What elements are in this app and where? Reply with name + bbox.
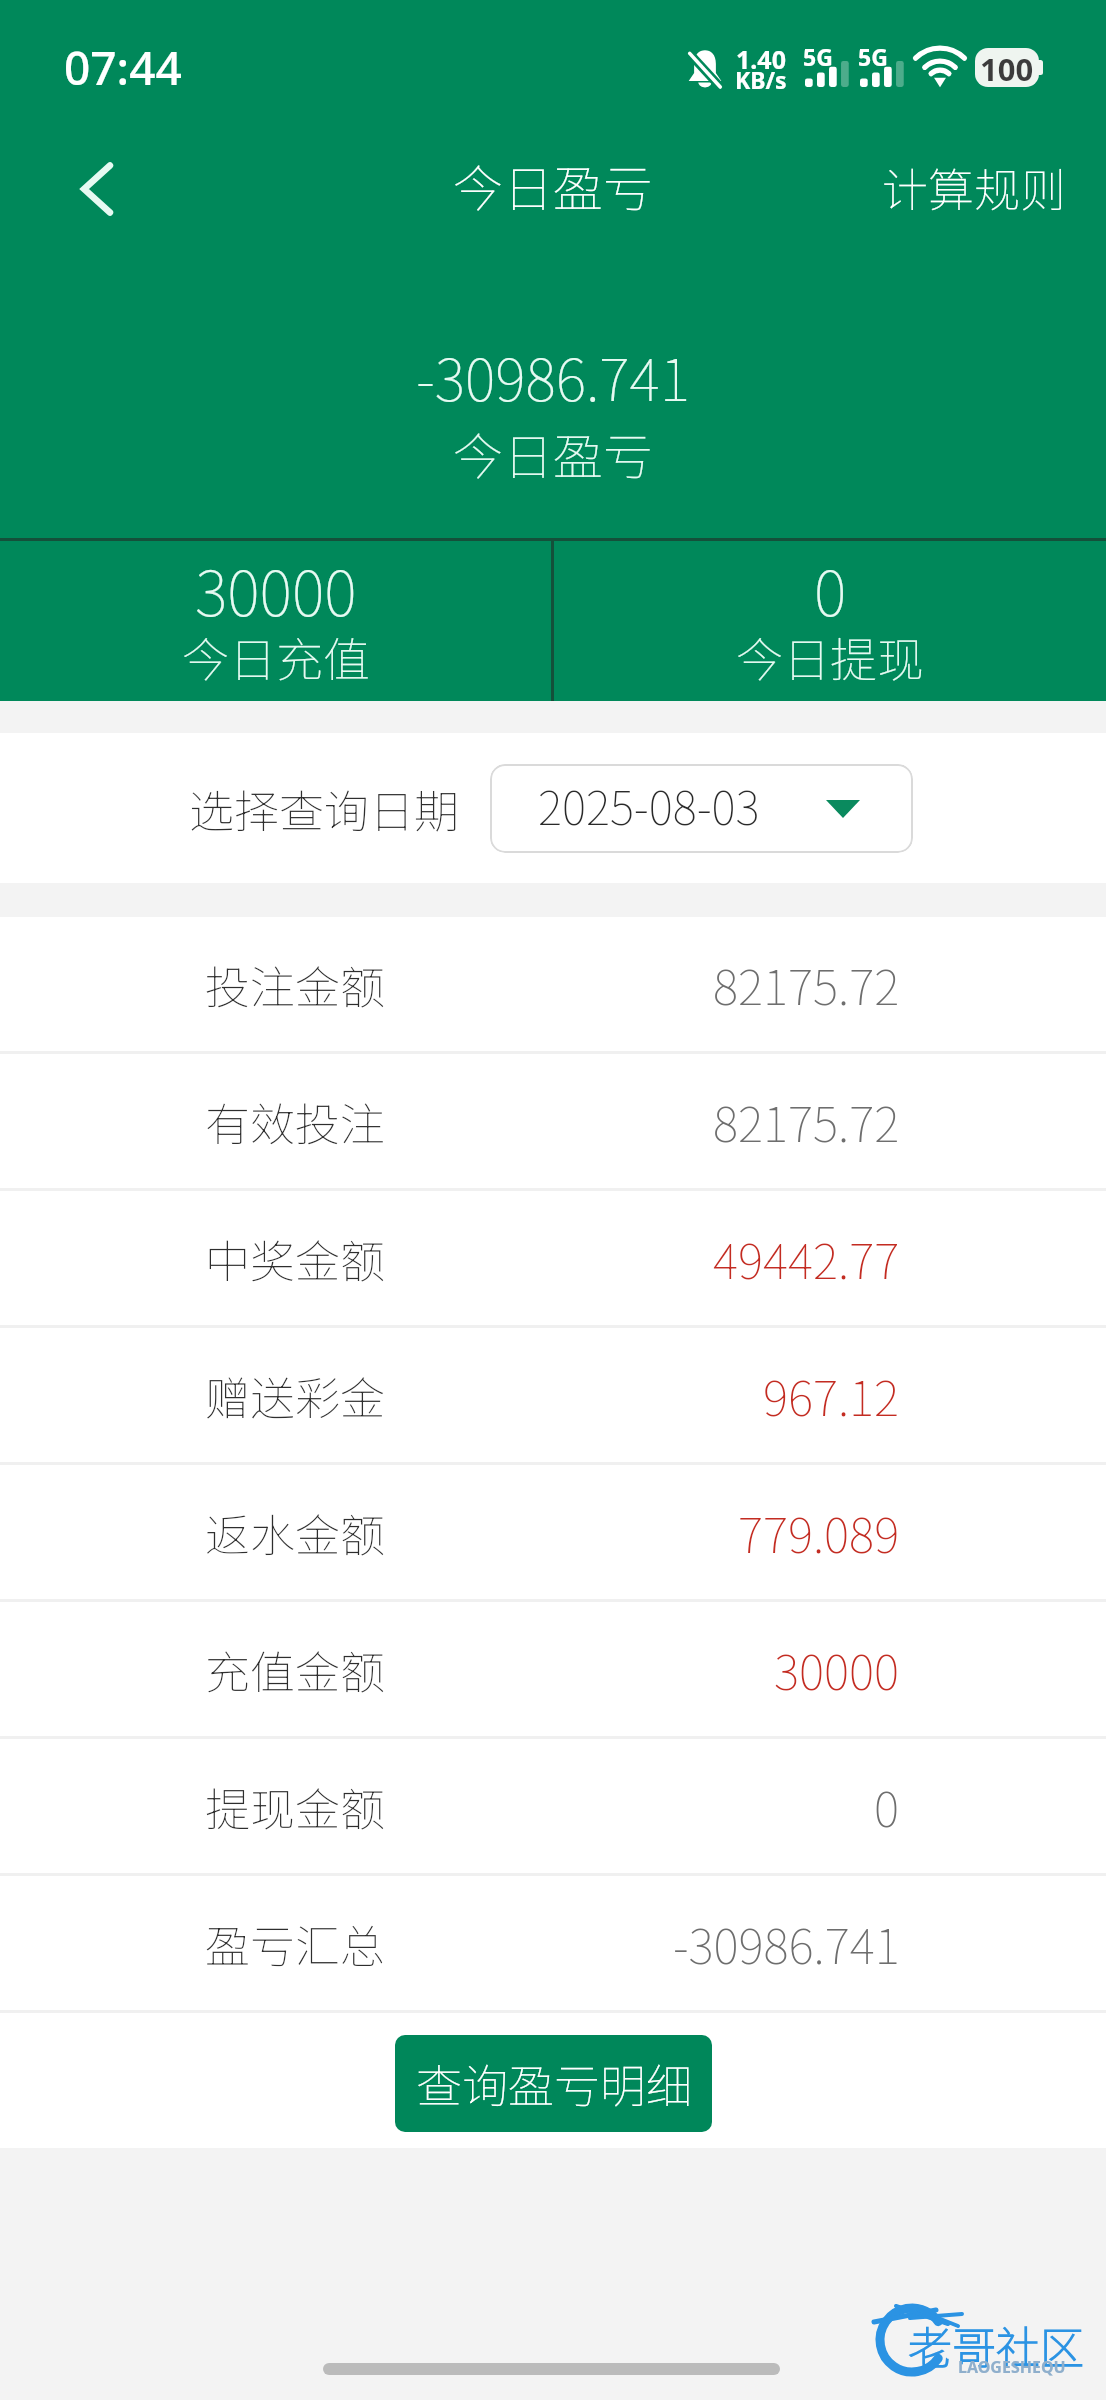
staticText: 盈亏汇总: [205, 1911, 386, 1976]
button[interactable]: 有效投注: [0, 1054, 1106, 1188]
staticText: 07:44: [64, 36, 182, 99]
staticText: 2025-08-03: [538, 772, 760, 839]
staticText: 0: [814, 544, 847, 634]
button[interactable]: 返水金额: [0, 1465, 1106, 1599]
staticText: 投注金额: [205, 952, 386, 1017]
staticText: 今日盈亏: [453, 417, 653, 489]
button[interactable]: 盈亏汇总: [0, 1876, 1106, 2010]
staticText: 选择查询日期: [189, 776, 460, 841]
button[interactable]: 提现金额: [0, 1739, 1106, 1873]
button[interactable]: 计算规则: [830, 136, 1106, 239]
button[interactable]: 中奖金额: [0, 1191, 1106, 1325]
staticText: 查询盈亏明细: [416, 2050, 692, 2117]
staticText: 967.12: [763, 1360, 900, 1430]
staticText: 100: [980, 48, 1034, 87]
button[interactable]: 0: [554, 541, 1106, 701]
staticText: 今日盈亏: [453, 149, 653, 221]
staticText: 返水金额: [205, 1500, 386, 1565]
staticText: 老哥社区: [908, 2313, 1084, 2377]
staticText: 0: [874, 1771, 900, 1841]
staticText: 今日充值: [182, 622, 370, 690]
staticText: -30986.741: [416, 334, 690, 418]
staticText: 今日提现: [736, 622, 924, 690]
button[interactable]: 赠送彩金: [0, 1328, 1106, 1462]
button[interactable]: 查询盈亏明细: [395, 2035, 712, 2132]
staticText: LAOGESHEQU: [958, 2356, 1066, 2378]
staticText: 779.089: [738, 1497, 900, 1567]
staticText: 30000: [195, 544, 357, 634]
staticText: 有效投注: [205, 1089, 386, 1154]
staticText: 充值金额: [205, 1637, 386, 1702]
staticText: KB/s: [735, 64, 787, 95]
button[interactable]: 2025-08-03: [490, 764, 913, 853]
staticText: 1.40: [736, 42, 786, 76]
staticText: 82175.72: [713, 949, 900, 1019]
staticText: 计算规则: [882, 154, 1066, 221]
button[interactable]: 投注金额: [0, 917, 1106, 1051]
staticText: 赠送彩金: [205, 1363, 386, 1428]
staticText: 5G: [858, 41, 888, 72]
staticText: 5G: [803, 41, 833, 72]
staticText: 中奖金额: [205, 1226, 386, 1291]
staticText: -30986.741: [673, 1908, 900, 1978]
staticText: 提现金额: [205, 1774, 386, 1839]
staticText: 49442.77: [713, 1223, 900, 1293]
button[interactable]: Back: [47, 139, 147, 239]
button[interactable]: 充值金额: [0, 1602, 1106, 1736]
button[interactable]: 30000: [0, 541, 551, 701]
staticText: 82175.72: [713, 1086, 900, 1156]
staticText: 30000: [774, 1634, 900, 1704]
